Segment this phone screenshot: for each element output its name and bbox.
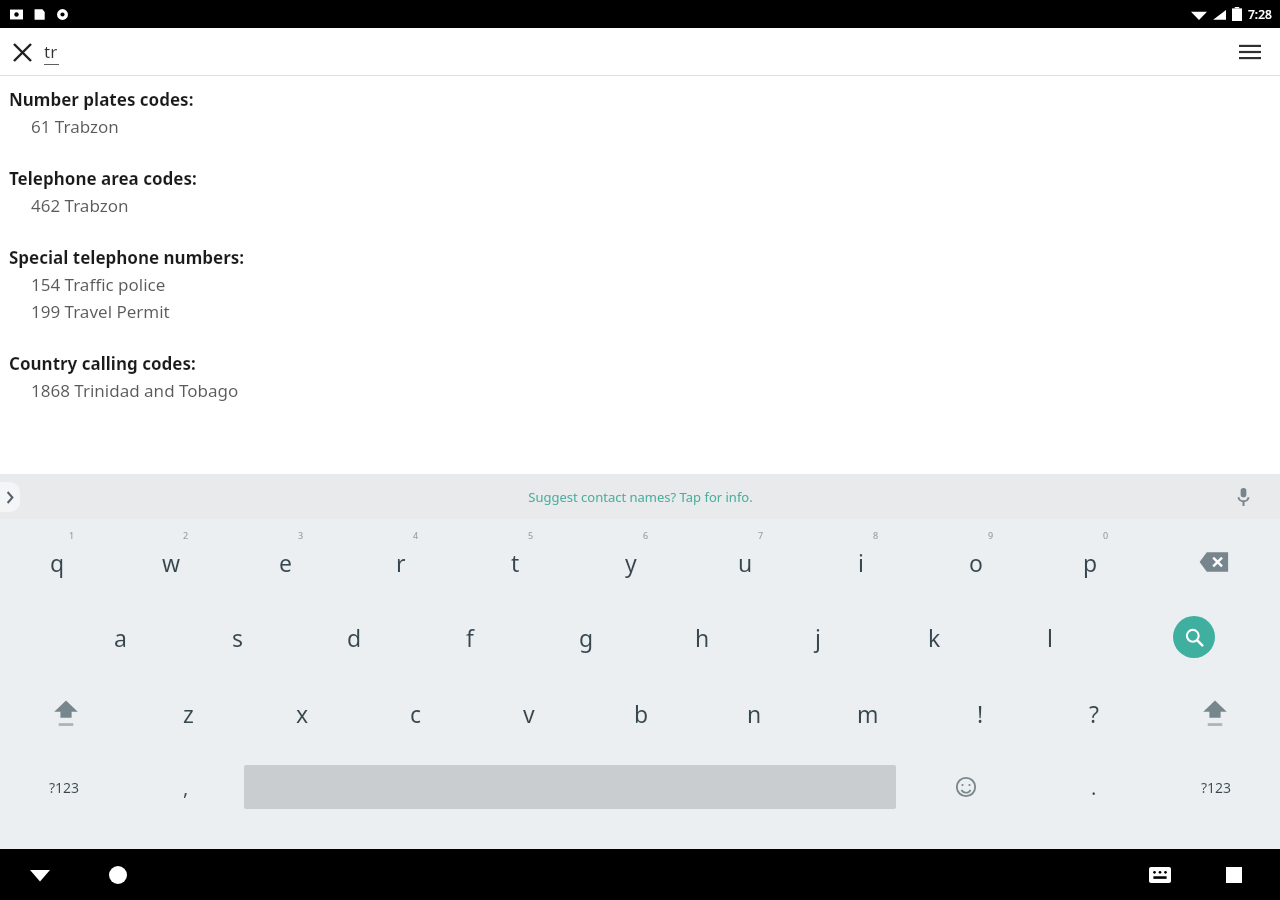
staticText: y [625,547,637,578]
button[interactable]: r [343,525,458,599]
button[interactable]: Shift [1150,675,1280,751]
staticText: 61 Trabzon [31,115,119,138]
staticText: k [928,622,941,653]
button[interactable]: l [992,599,1108,675]
button[interactable]: v [472,675,585,751]
staticText: o [969,547,983,578]
button[interactable]: Change keyboard [1134,849,1186,900]
button[interactable]: d [296,599,412,675]
button[interactable]: ! [924,675,1037,751]
button[interactable]: s [179,599,296,675]
button[interactable]: ?123 [0,751,128,823]
button[interactable]: p [1033,525,1148,599]
staticText: 5 [528,529,534,541]
staticText: ? [1089,698,1099,729]
button[interactable]: o [918,525,1033,599]
button[interactable]: y [573,525,688,599]
button[interactable]: ?123 [1152,751,1280,823]
staticText: d [347,622,362,653]
button[interactable]: u [688,525,803,599]
staticText: , [183,774,189,801]
staticText: q [50,547,65,578]
staticText: n [747,698,762,729]
button[interactable]: , [128,751,244,823]
staticText: f [466,622,474,653]
button[interactable]: Menu [1228,30,1272,74]
staticText: v [523,698,535,729]
staticText: w [162,547,181,578]
staticText: p [1083,547,1098,578]
button[interactable]: j [760,599,876,675]
button[interactable]: Search [1108,599,1280,675]
button[interactable]: x [245,675,359,751]
staticText: 199 Travel Permit [31,300,170,323]
staticText: 7:28 [1248,6,1272,22]
staticText: u [738,547,753,578]
staticText: z [183,698,194,729]
staticText: 9 [988,529,994,541]
button[interactable]: Suggest contact names? Tap for info. [528,488,753,506]
staticText: c [410,698,422,729]
staticText: t [511,547,520,578]
button[interactable]: b [585,675,698,751]
staticText: 0 [1103,529,1109,541]
staticText: . [1091,774,1097,801]
staticText: 1868 Trinidad and Tobago [31,379,239,402]
button[interactable]: Emoji [896,751,1036,823]
staticText: b [634,698,649,729]
staticText: h [695,622,710,653]
staticText: Special telephone numbers: [9,246,245,269]
staticText: g [579,622,594,653]
button[interactable]: Close [0,30,44,74]
button[interactable]: e [228,525,343,599]
staticText: 1 [69,529,75,541]
button[interactable]: Recents [1208,849,1260,900]
button[interactable]: . [1036,751,1152,823]
button[interactable]: Home [92,849,144,900]
button[interactable]: q [0,525,114,599]
staticText: i [858,547,864,578]
button[interactable]: g [528,599,644,675]
staticText: tr [44,40,58,63]
button[interactable]: Expand suggestions [0,482,20,512]
button[interactable]: k [876,599,992,675]
staticText: 462 Trabzon [31,194,129,217]
button[interactable]: a [62,599,179,675]
staticText: 2 [183,529,189,541]
staticText: 154 Traffic police [31,273,166,296]
staticText: ?123 [49,778,80,797]
staticText: Suggest contact names? Tap for info. [528,488,753,506]
button[interactable]: z [131,675,245,751]
staticText: 7 [758,529,764,541]
staticText: Country calling codes: [9,352,196,375]
button[interactable]: m [811,675,924,751]
staticText: e [279,547,292,578]
button[interactable]: Shift [0,675,131,751]
staticText: ! [977,698,984,729]
button[interactable]: h [644,599,760,675]
staticText: a [114,622,127,653]
staticText: j [815,622,821,653]
staticText: 3 [298,529,304,541]
button[interactable]: f [412,599,528,675]
staticText: s [232,622,244,653]
staticText: 4 [413,529,419,541]
staticText: m [857,698,879,729]
button[interactable]: c [359,675,472,751]
staticText: Number plates codes: [9,88,194,111]
button[interactable]: ? [1037,675,1150,751]
staticText: 6 [643,529,649,541]
button[interactable]: n [698,675,811,751]
staticText: 8 [873,529,879,541]
button[interactable]: i [803,525,918,599]
button[interactable]: Back [14,849,66,900]
staticText: ?123 [1201,778,1232,797]
staticText: Telephone area codes: [9,167,197,190]
button[interactable]: Voice input [1228,482,1258,512]
button[interactable]: w [114,525,228,599]
staticText: l [1047,622,1053,653]
button[interactable]: Backspace [1148,525,1280,599]
button[interactable]: t [458,525,573,599]
staticText: r [396,547,406,578]
